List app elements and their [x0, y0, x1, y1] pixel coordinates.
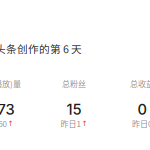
- staticText: 头条创作的第 6 天: [0, 41, 82, 56]
- staticText: ↑: [7, 119, 13, 128]
- staticText: 总粉丝: [62, 78, 86, 89]
- staticText: (播放)量: [0, 78, 21, 89]
- staticText: 昨日1: [60, 118, 80, 129]
- button[interactable]: 总收益: [105, 79, 150, 88]
- staticText: 昨日0: [132, 118, 150, 129]
- button[interactable]: 总粉丝: [37, 79, 111, 88]
- button[interactable]: 50: [0, 119, 43, 128]
- button[interactable]: 昨日0: [105, 119, 150, 128]
- button[interactable]: 0: [105, 103, 150, 116]
- staticText: ↑: [81, 119, 87, 128]
- button[interactable]: 昨日1: [37, 119, 111, 128]
- staticText: 73: [0, 101, 14, 118]
- staticText: 50: [0, 118, 6, 129]
- staticText: 0: [137, 101, 146, 118]
- button[interactable]: (播放)量: [0, 79, 43, 88]
- button[interactable]: 15: [37, 103, 111, 116]
- button[interactable]: 73: [0, 103, 43, 116]
- staticText: 15: [66, 101, 81, 118]
- staticText: 总收益: [130, 78, 150, 89]
